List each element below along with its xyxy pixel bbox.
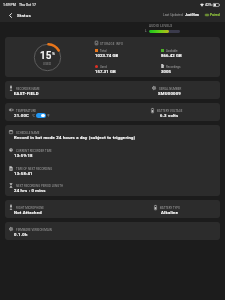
staticText: 1:59 PM [3,3,16,7]
staticText: SMU00009 [158,91,182,96]
staticText: Used [100,65,107,68]
staticText: EAST-FIELD [14,91,39,96]
staticText: TIME OF NEXT RECORDING [16,167,53,170]
staticText: SCHEDULE NAME [16,131,40,134]
staticText: BATTERY VOLTAGE [157,109,183,112]
button[interactable]: Temperature unit [36,113,46,118]
staticText: AUDIO LEVELS [149,24,173,28]
staticText: 3005 [161,69,172,74]
button[interactable]: RIGHT MICROPHONE [5,200,112,218]
staticText: CURRENT RECORDER TIME [16,149,52,152]
staticText: Paired [210,13,220,17]
button[interactable]: NEXT RECORDING PERIOD LENGTH [5,179,220,196]
staticText: 866.42 GB [161,53,182,58]
staticText: Status [17,13,31,18]
staticText: FIRMWARE VERSION MAIN [16,228,52,231]
staticText: Total [100,49,107,52]
staticText: TEMPERATURE [16,109,37,112]
button[interactable]: BATTERY VOLTAGE [112,103,220,121]
staticText: Last Updated: [163,13,184,17]
button[interactable]: SERIAL NUMBER [112,81,220,99]
button[interactable]: 15 [5,37,220,77]
staticText: RIGHT MICROPHONE [16,206,44,209]
staticText: 15 [40,50,52,62]
staticText: % [52,51,55,56]
staticText: 24 hrs : 0 mins [14,188,46,193]
button[interactable]: RECORDER NAME [5,81,112,99]
staticText: Not Attached [14,210,42,215]
staticText: 1023.74 GB [95,53,119,58]
staticText: L [145,29,147,33]
staticText: RECORDER NAME [16,87,40,90]
staticText: °F [47,114,50,117]
button[interactable]: TIME OF NEXT RECORDING [5,161,220,179]
staticText: Record in bat mode 24 hours a day (subje… [14,135,136,140]
staticText: °C [32,114,35,117]
staticText: 0.1.0h [14,232,28,237]
staticText: 13:59:18 [14,153,33,158]
staticText: 21.00C [14,113,30,118]
staticText: SERIAL NUMBER [159,87,182,90]
staticText: 6.3 volts [160,113,179,118]
staticText: Available [166,49,178,52]
staticText: Recordings [166,65,181,68]
button[interactable]: CURRENT RECORDER TIME [5,143,220,161]
button[interactable]: BATTERY TYPE [112,200,220,218]
staticText: 13:58:41 [14,171,33,176]
staticText: 157.31 GB [95,69,116,74]
staticText: Thu Oct 17 [19,3,37,7]
staticText: Just Now [185,13,199,17]
staticText: USED [43,62,52,65]
button[interactable]: FIRMWARE VERSION MAIN [5,222,220,240]
staticText: Alkaline [161,210,179,215]
staticText: NEXT RECORDING PERIOD LENGTH [16,184,63,187]
staticText: STORAGE INFO [100,42,124,45]
staticText: 42% [205,3,212,7]
button[interactable]: Back [6,11,15,20]
button[interactable]: Paired [205,13,220,17]
button[interactable]: SCHEDULE NAME [5,125,220,143]
button[interactable]: TEMPERATURE [5,103,112,121]
staticText: BATTERY TYPE [160,206,181,209]
